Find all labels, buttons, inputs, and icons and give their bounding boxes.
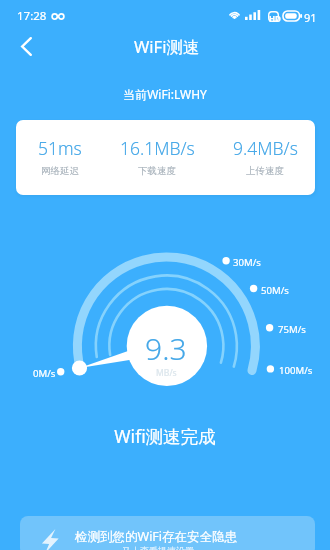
staticText: MB/s (156, 367, 177, 379)
staticText: 91 (304, 10, 317, 25)
staticText: 16.1MB/s (120, 136, 195, 160)
button[interactable]: 检测到您的WiFi存在安全隐患 (20, 516, 315, 550)
staticText: 17:28 (17, 8, 47, 24)
staticText: 51ms (38, 136, 82, 160)
staticText: 检测到您的WiFi存在安全隐患 (75, 528, 238, 545)
staticText: 9.3 (145, 328, 187, 369)
staticText: 马上查看提速设置 (122, 545, 194, 550)
staticText: Wifi测速完成 (0, 424, 330, 448)
staticText: 30M/s (233, 256, 261, 269)
staticText: 当前WiFi:LWHY (0, 86, 330, 102)
staticText: 上传速度 (246, 165, 284, 177)
staticText: HD (269, 13, 281, 24)
staticText: 75M/s (278, 323, 306, 336)
staticText: 0M/s (33, 367, 56, 380)
staticText: 9.4MB/s (233, 136, 298, 160)
staticText: 50M/s (261, 284, 289, 297)
staticText: 下载速度 (138, 165, 176, 177)
staticText: 网络延迟 (41, 165, 79, 177)
button[interactable]: Back (11, 31, 42, 62)
staticText: 100M/s (279, 364, 313, 377)
staticText: WiFi测速 (134, 35, 200, 58)
